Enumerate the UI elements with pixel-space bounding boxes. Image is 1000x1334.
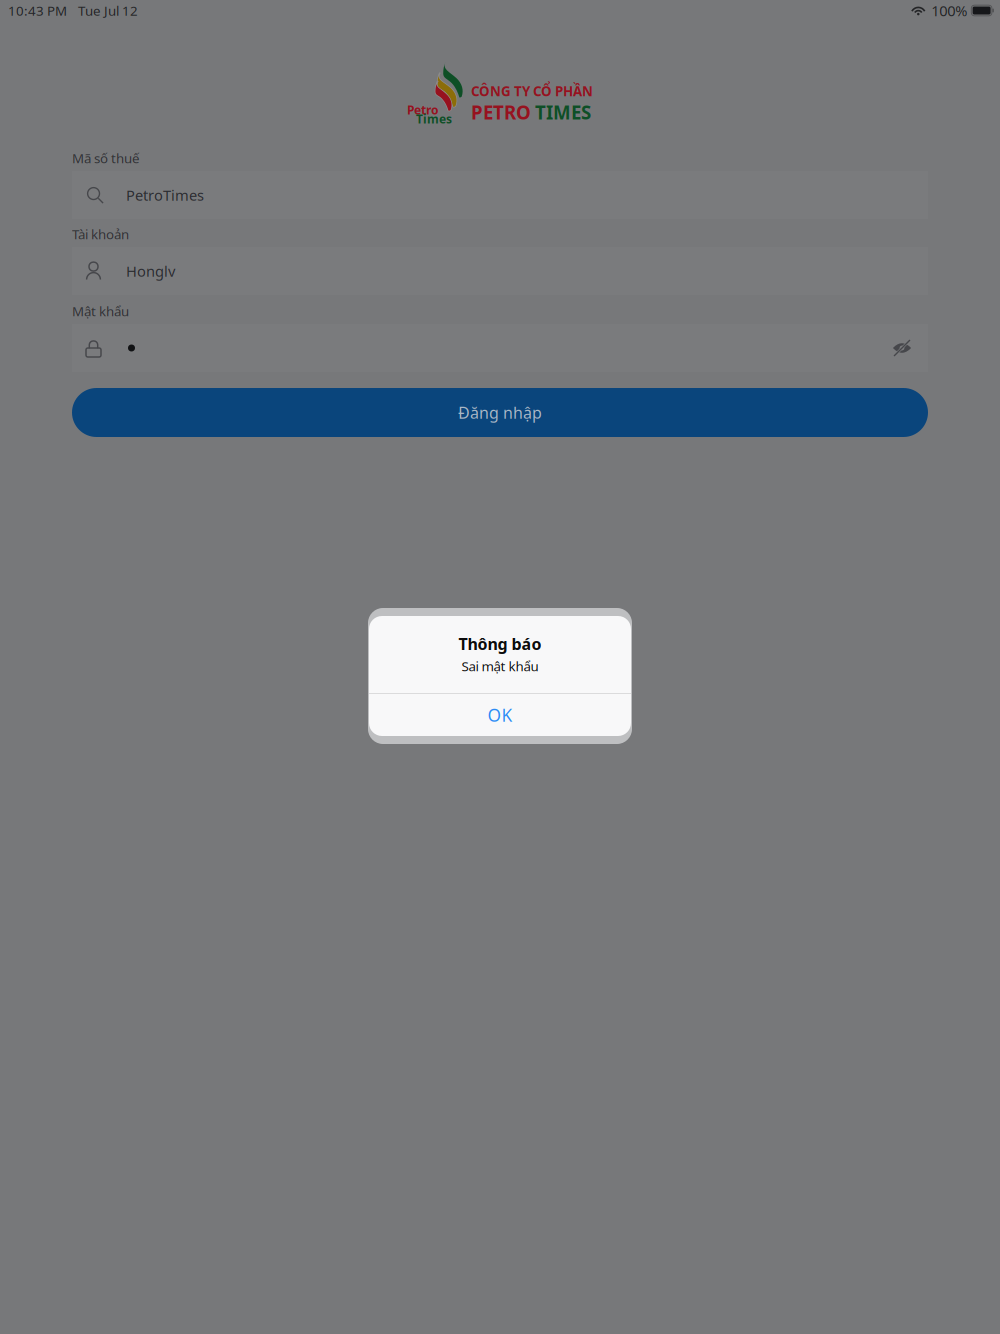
staticText: Mã số thuế (72, 149, 140, 167)
staticText: PETRO (471, 100, 531, 125)
staticText: Sai mật khẩu (461, 657, 538, 675)
staticText: TIMES (535, 100, 591, 125)
staticText: Thông báo (458, 633, 541, 654)
staticText: CÔNG TY CỔ PHẦN (471, 82, 593, 100)
button[interactable]: Đăng nhập (72, 388, 928, 437)
staticText: Tue Jul 12 (78, 2, 138, 19)
staticText: Honglv (126, 261, 175, 281)
button[interactable]: OK (369, 694, 631, 736)
staticText: OK (487, 703, 512, 726)
staticText: Petro (407, 102, 439, 118)
staticText: Times (416, 111, 452, 127)
staticText: Đăng nhập (458, 402, 542, 423)
button[interactable]: Hiện mật khẩu (876, 324, 928, 372)
staticText: 10:43 PM (8, 2, 67, 19)
staticText: 100% (931, 1, 967, 20)
staticText: Tài khoản (72, 225, 129, 243)
staticText: PetroTimes (126, 185, 204, 205)
staticText: Mật khẩu (72, 302, 129, 320)
